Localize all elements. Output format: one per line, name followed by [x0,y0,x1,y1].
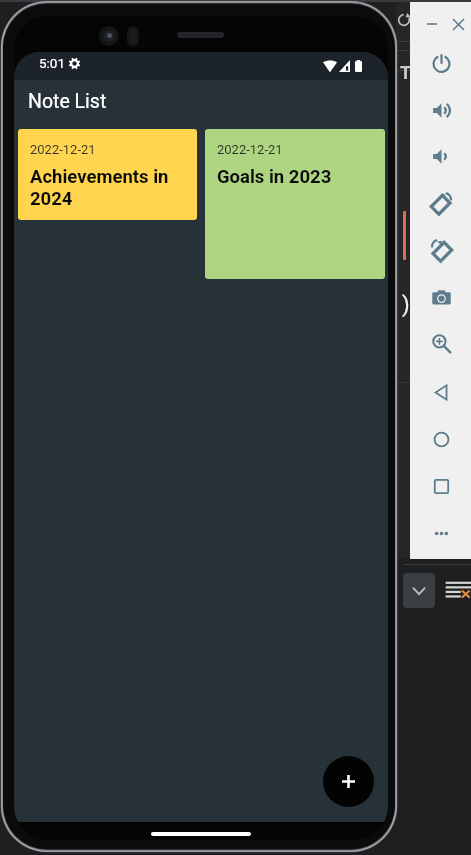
staticText: T [400,62,412,83]
staticText: 5:01 [39,55,66,71]
button[interactable]: Close [448,14,468,34]
staticText: ) [402,292,410,318]
button[interactable]: Rotate left [427,236,455,264]
staticText: Note List [28,90,107,113]
button[interactable]: Clear logs [444,578,471,602]
button[interactable]: Back [427,378,455,406]
staticText: 2022-12-21 [30,142,96,157]
button[interactable]: Expand [403,573,435,608]
button[interactable]: Volume down [427,142,455,170]
button[interactable]: Minimize [422,14,442,34]
button[interactable]: Rotate right [427,189,455,217]
staticText: Goals in 2023 [217,166,379,188]
button[interactable]: 2022-12-21 [205,129,385,279]
button[interactable]: Power [427,49,455,77]
button[interactable]: 2022-12-21 [18,129,197,220]
button[interactable]: Screenshot [427,283,455,311]
button[interactable]: Add note [323,756,374,807]
button[interactable]: More [427,519,455,547]
button[interactable]: Zoom [427,329,455,357]
button[interactable]: Home [427,425,455,453]
staticText: 2022-12-21 [217,142,283,157]
staticText: Achievements in 2024 [30,166,191,209]
button[interactable]: Recents [427,472,455,500]
button[interactable]: Volume up [427,96,455,124]
